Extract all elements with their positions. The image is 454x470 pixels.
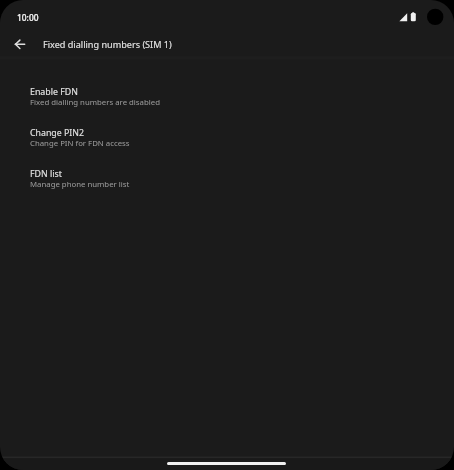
staticText: Manage phone number list — [30, 179, 130, 190]
button[interactable]: Change PIN2 — [0, 119, 454, 160]
staticText: Change PIN2 — [30, 127, 85, 139]
button[interactable]: FDN list — [0, 160, 454, 201]
staticText: Fixed dialling numbers are disabled — [30, 97, 160, 108]
staticText: 10:00 — [17, 12, 39, 23]
staticText: Enable FDN — [30, 86, 78, 98]
staticText: Fixed dialling numbers (SIM 1) — [43, 38, 172, 50]
button[interactable]: Enable FDN — [0, 78, 454, 119]
staticText: FDN list — [30, 168, 62, 180]
staticText: Change PIN for FDN access — [30, 138, 130, 149]
button[interactable]: Navigate up — [6, 31, 34, 59]
